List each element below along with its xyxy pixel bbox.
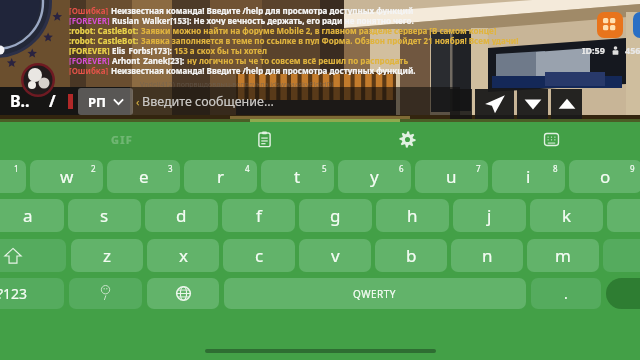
staticText: z [103,244,111,267]
button[interactable]: Clipboard [234,124,294,154]
button[interactable]: QWERTY [224,278,526,309]
staticText: d [176,204,187,227]
button[interactable]: a [0,199,64,232]
staticText: 4 [245,163,250,174]
button[interactable]: r [184,160,257,193]
button[interactable]: c [223,239,295,272]
staticText: Arhont_Zanek[23]: [112,55,187,65]
staticText: t [294,165,301,188]
staticText: 9 [630,163,635,174]
staticText: :robot: CastleBot: [69,35,141,45]
button[interactable]: b [375,239,447,272]
button[interactable]: n [451,239,523,272]
staticText: e [139,165,149,188]
button[interactable]: . [531,278,601,309]
staticText: x [179,244,188,267]
staticText: Elis_Forbs[173]: [112,45,174,55]
button[interactable]: j [453,199,526,232]
staticText: Неизвестная команда! Введите /help для п… [111,5,414,15]
button[interactable]: Shift [0,239,66,272]
button[interactable]: y [338,160,411,193]
button[interactable]: u [415,160,488,193]
staticText: Введите сообщение... [142,93,274,110]
staticText: o [600,165,611,188]
button[interactable]: ?123 [0,278,64,309]
staticText: b [406,244,417,267]
staticText: Неизвестная команда! Введите /help для п… [111,65,416,75]
button[interactable]: z [71,239,143,272]
staticText: c [255,244,264,267]
button[interactable]: v [299,239,371,272]
staticText: 456 [625,44,640,56]
button[interactable]: l [607,199,640,232]
staticText: [FOREVER] [69,15,112,25]
button[interactable]: / [40,87,64,115]
button[interactable]: m [527,239,599,272]
staticText: B.. [10,90,30,112]
staticText: Ruslan_Walker[153]: Не хочу вечность дер… [112,15,414,25]
staticText: ?123 [0,284,28,303]
button[interactable]: Enter [606,278,640,309]
button[interactable]: B.. [0,87,40,115]
button[interactable]: Scroll up [551,89,582,119]
staticText: 6 [399,163,404,174]
staticText: k [562,204,572,227]
staticText: n [482,244,493,267]
button[interactable]: Menu [597,12,623,38]
staticText: j [487,204,492,227]
staticText: 1 [14,163,19,174]
staticText: Заявка заполняется в теме по ссылке в пу… [141,35,519,45]
button[interactable]: GIF [92,124,152,154]
staticText: y [370,165,379,188]
button[interactable]: q [0,160,26,193]
staticText: 3 [168,163,173,174]
staticText: r [217,165,225,188]
staticText: i [526,165,531,188]
staticText: 5 [322,163,327,174]
button[interactable]: Send [475,89,514,119]
button[interactable]: Settings [377,124,437,154]
staticText: . [564,284,568,303]
button[interactable]: Emoji [69,278,142,309]
button[interactable]: d [145,199,218,232]
staticText: a [23,204,33,227]
button[interactable]: e [107,160,180,193]
staticText: ID:59 [582,44,605,56]
staticText: f [256,204,262,227]
button[interactable]: h [376,199,449,232]
button[interactable]: Number pad [521,124,581,154]
staticText: 8 [553,163,558,174]
button[interactable]: k [530,199,603,232]
staticText: ‹ [136,94,140,109]
staticText: w [60,165,74,188]
staticText: QWERTY [353,287,397,301]
staticText: :robot: CastleBot: [69,25,141,35]
staticText: Заявки можно найти на форуме Mobile 2, в… [141,25,497,35]
button[interactable]: Phone [633,12,640,38]
button[interactable]: i [492,160,565,193]
button[interactable]: x [147,239,219,272]
button[interactable]: o [569,160,640,193]
button[interactable]: Language [147,278,219,309]
button[interactable]: s [68,199,141,232]
staticText: [Ошибка] [69,5,111,15]
button[interactable]: f [222,199,295,232]
staticText: 153 а скох бы ты хотел [174,45,267,55]
staticText: m [555,244,571,267]
button[interactable]: w [30,160,103,193]
staticText: v [331,244,340,267]
staticText: 2 [91,163,96,174]
staticText: h [407,204,418,227]
staticText: РП [88,93,107,111]
button[interactable]: t [261,160,334,193]
button[interactable]: g [299,199,372,232]
staticText: s [100,204,109,227]
staticText: [FOREVER] [69,55,112,65]
staticText: g [330,204,341,227]
button[interactable]: Scroll down [517,89,548,119]
button[interactable]: РП [78,88,133,115]
staticText: ну логично ты че то совсем всё решил по … [187,55,409,65]
staticText: Vndel(412) попрвщдовдыц-вопрдукпа jdswwa… [140,80,334,90]
staticText: GIF [111,132,133,147]
